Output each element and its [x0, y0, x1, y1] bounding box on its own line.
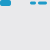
button[interactable]: [30, 1, 36, 4]
button[interactable]: [0, 0, 11, 6]
button[interactable]: [38, 1, 47, 4]
